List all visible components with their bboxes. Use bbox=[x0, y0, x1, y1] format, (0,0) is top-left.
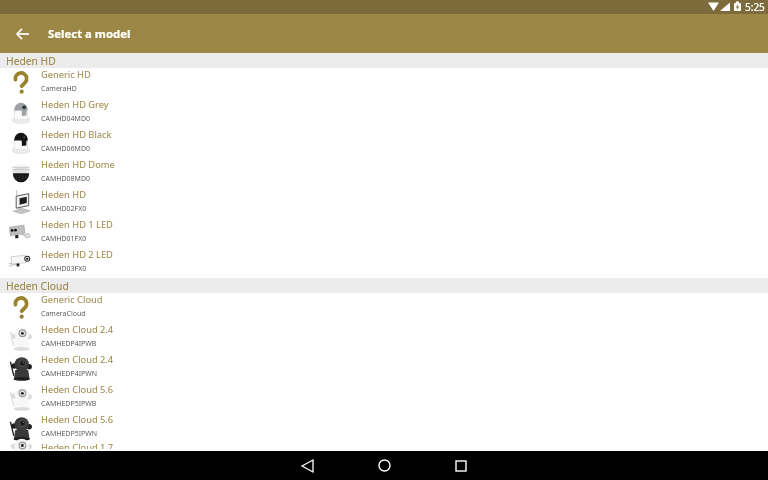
staticText: CAMHD06MD0 bbox=[41, 144, 91, 154]
staticText: Heden HD Black bbox=[41, 128, 112, 141]
button[interactable]: Heden Cloud 5.6 bbox=[0, 413, 768, 443]
staticText: Heden HD bbox=[6, 54, 56, 68]
staticText: Heden Cloud 2.4 bbox=[41, 353, 114, 366]
staticText: Heden HD bbox=[41, 188, 86, 201]
staticText: Heden HD Grey bbox=[41, 98, 109, 111]
staticText: CAMHD01FX0 bbox=[41, 234, 87, 244]
staticText: CAMHEDP5IPWN bbox=[41, 429, 98, 439]
staticText: Generic HD bbox=[41, 68, 91, 81]
button[interactable]: Generic HD bbox=[0, 68, 768, 98]
staticText: Select a model bbox=[48, 26, 131, 42]
button[interactable]: Generic Cloud bbox=[0, 293, 768, 323]
button[interactable]: Heden Cloud 1.7 bbox=[0, 443, 768, 451]
staticText: Heden Cloud 1.7 bbox=[41, 441, 114, 449]
staticText: Heden Cloud 5.6 bbox=[41, 413, 114, 426]
button[interactable]: Heden HD 1 LED bbox=[0, 218, 768, 248]
button[interactable]: Home bbox=[346, 451, 422, 480]
button[interactable]: Recent apps bbox=[423, 451, 499, 480]
staticText: Heden HD 1 LED bbox=[41, 218, 113, 231]
staticText: Heden HD 2 LED bbox=[41, 248, 113, 261]
staticText: CAMHD02FX0 bbox=[41, 204, 87, 214]
button[interactable]: Back bbox=[269, 451, 345, 480]
staticText: CAMHEDP5IPWB bbox=[41, 399, 97, 409]
button[interactable]: Heden Cloud 2.4 bbox=[0, 353, 768, 383]
staticText: Heden Cloud bbox=[6, 279, 69, 293]
staticText: Heden HD Dome bbox=[41, 158, 115, 171]
staticText: CameraHD bbox=[41, 84, 77, 94]
staticText: CAMHD03FX0 bbox=[41, 264, 87, 274]
button[interactable]: Heden HD Black bbox=[0, 128, 768, 158]
staticText: CAMHEDP4IPWB bbox=[41, 339, 97, 349]
staticText: Generic Cloud bbox=[41, 293, 103, 306]
button[interactable]: Back bbox=[0, 14, 44, 53]
button[interactable]: Heden HD Grey bbox=[0, 98, 768, 128]
staticText: Heden Cloud 2.4 bbox=[41, 323, 114, 336]
staticText: CAMHD04MD0 bbox=[41, 114, 91, 124]
staticText: 5:25 bbox=[745, 0, 765, 14]
staticText: CAMHD08MD0 bbox=[41, 174, 91, 184]
staticText: Heden Cloud 5.6 bbox=[41, 383, 114, 396]
button[interactable]: Heden HD Dome bbox=[0, 158, 768, 188]
staticText: CAMHEDP4IPWN bbox=[41, 369, 98, 379]
button[interactable]: Heden Cloud 5.6 bbox=[0, 383, 768, 413]
button[interactable]: Heden Cloud 2.4 bbox=[0, 323, 768, 353]
button[interactable]: Heden HD bbox=[0, 188, 768, 218]
staticText: CameraCloud bbox=[41, 309, 86, 319]
button[interactable]: Heden HD 2 LED bbox=[0, 248, 768, 278]
